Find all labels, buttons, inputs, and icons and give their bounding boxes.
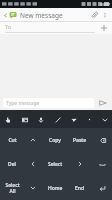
button[interactable]: Select All <box>0 176 24 200</box>
button[interactable]: End <box>68 176 92 200</box>
staticText: Select <box>48 161 63 168</box>
button[interactable]: Type message <box>3 98 94 108</box>
button[interactable]: Enter <box>92 176 112 200</box>
button[interactable]: Navigate up <box>2 11 18 19</box>
button[interactable]: Select <box>42 152 68 176</box>
button[interactable]: Del <box>0 152 24 176</box>
staticText: Home <box>48 185 63 192</box>
staticText: 06:27 <box>100 2 111 7</box>
button[interactable]: Move down <box>24 176 42 200</box>
button[interactable]: Move left <box>24 152 42 176</box>
staticText: Copy <box>49 137 61 144</box>
button[interactable]: More <box>85 115 94 124</box>
button[interactable]: Space <box>92 152 112 176</box>
button[interactable]: Handwriting <box>52 114 63 125</box>
staticText: New message <box>20 11 63 20</box>
button[interactable]: Paste <box>68 128 92 152</box>
button[interactable]: Voice input <box>35 114 46 125</box>
button[interactable]: Home <box>42 176 68 200</box>
button[interactable]: Attach <box>88 9 100 21</box>
other: Navigate up <box>3 13 8 18</box>
button[interactable]: Copy <box>42 128 68 152</box>
staticText: Del <box>8 161 16 168</box>
button[interactable]: Move right <box>68 152 92 176</box>
button[interactable]: Send <box>97 97 109 108</box>
button[interactable]: Move up <box>24 128 42 152</box>
staticText: To <box>5 23 12 30</box>
button[interactable]: To <box>5 23 95 33</box>
button[interactable]: Sticker <box>19 114 30 125</box>
staticText: Cut <box>8 137 17 144</box>
button[interactable]: Add recipient <box>99 23 109 33</box>
button[interactable]: Hide keyboard <box>99 114 110 125</box>
button[interactable]: More options <box>100 10 110 20</box>
button[interactable]: Share <box>68 114 79 125</box>
staticText: End <box>75 185 85 192</box>
staticText: Paste <box>73 137 87 144</box>
staticText: Select All <box>5 182 20 195</box>
button[interactable]: Clipboard <box>2 114 13 125</box>
button[interactable]: Cut <box>0 128 24 152</box>
button[interactable]: Backspace <box>92 128 112 152</box>
staticText: Type message <box>6 100 40 107</box>
